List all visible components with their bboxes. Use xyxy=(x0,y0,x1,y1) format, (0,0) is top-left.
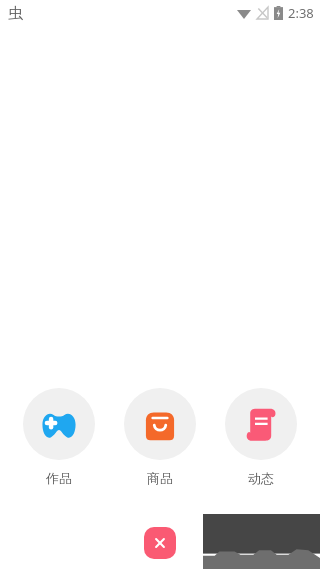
staticText: 虫 xyxy=(8,4,23,23)
button[interactable]: 作品 xyxy=(17,388,101,486)
staticText: 作品 xyxy=(46,470,72,486)
staticText: 动态 xyxy=(248,470,274,486)
button[interactable]: Close xyxy=(144,527,176,559)
button[interactable]: 动态 xyxy=(219,388,303,486)
staticText: 2:38 xyxy=(288,4,314,22)
staticText: 商品 xyxy=(147,470,173,486)
button[interactable]: 商品 xyxy=(118,388,202,486)
